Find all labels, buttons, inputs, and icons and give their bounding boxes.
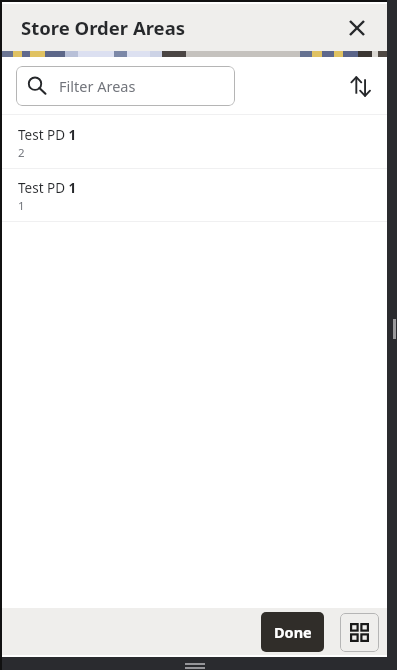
button[interactable]: Grid view [340,613,379,652]
staticText: 2 [18,145,25,161]
staticText: Done [274,622,312,642]
staticText: Store Order Areas [21,15,186,40]
staticText: 1 [18,198,25,214]
button[interactable]: Test PD 1 [0,115,388,168]
staticText: Test PD 1 [18,126,77,144]
button[interactable]: Test PD 1 [0,169,388,221]
button[interactable]: Close [339,10,375,46]
staticText: Filter Areas [59,76,136,96]
button[interactable]: Done [261,612,324,652]
staticText: Test PD 1 [18,179,77,197]
button[interactable]: Filter Areas [16,66,235,106]
button[interactable]: Sort [343,69,377,103]
